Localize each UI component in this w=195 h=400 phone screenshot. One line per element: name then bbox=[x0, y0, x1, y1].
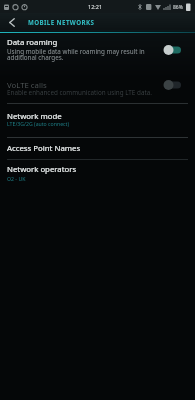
staticText: LTE/3G/2G (auto connect) bbox=[7, 120, 69, 127]
staticText: Network mode bbox=[7, 111, 62, 122]
staticText: O2 - UK bbox=[7, 175, 26, 182]
button[interactable]: VoLTE calls bbox=[0, 78, 195, 100]
button[interactable] bbox=[0, 13, 24, 31]
staticText: Using mobile data while roaming may resu… bbox=[7, 47, 145, 56]
staticText: additional charges. bbox=[7, 53, 64, 62]
staticText: 86% bbox=[173, 4, 183, 11]
staticText: MOBILE NETWORKS bbox=[28, 18, 95, 26]
button[interactable]: Network operators bbox=[0, 163, 195, 186]
staticText: 12:21 bbox=[88, 3, 103, 10]
staticText: Network operators bbox=[7, 164, 77, 175]
staticText: Data roaming bbox=[7, 37, 58, 48]
button[interactable]: Access Point Names bbox=[0, 142, 195, 158]
button[interactable]: Network mode bbox=[0, 110, 195, 133]
staticText: VoLTE calls bbox=[7, 80, 47, 91]
button[interactable]: Data roaming bbox=[0, 36, 195, 64]
staticText: Access Point Names bbox=[7, 143, 81, 154]
staticText: Enable enhanced communication using LTE … bbox=[7, 88, 152, 97]
